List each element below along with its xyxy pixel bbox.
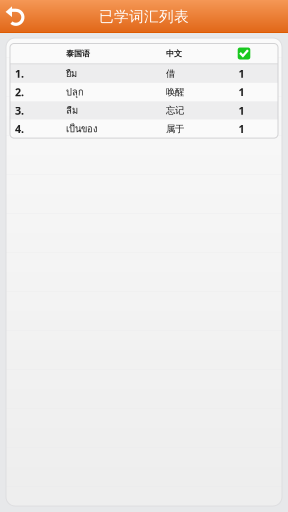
staticText: 3. [15,103,24,118]
staticText: 1 [238,122,244,136]
staticText: 中文 [166,49,182,58]
staticText: 4. [15,122,24,136]
button[interactable]: Back [0,0,34,32]
staticText: 1. [15,67,24,81]
staticText: 已学词汇列表 [99,7,189,25]
staticText: 2. [15,85,24,99]
staticText: 属于 [166,123,184,135]
staticText: เป็นของ [66,122,98,136]
staticText: 1 [238,67,244,81]
staticText: 借 [166,68,175,79]
button[interactable]: 4. [10,120,278,138]
staticText: ลืม [66,103,78,118]
staticText: ยืม [66,66,77,81]
staticText: 1 [238,85,244,99]
button[interactable]: 3. [10,101,278,120]
staticText: ปลุก [66,85,84,99]
button[interactable]: 1. [10,64,278,83]
staticText: 泰国语 [66,49,90,58]
staticText: 1 [238,103,244,118]
button[interactable]: 2. [10,83,278,101]
staticText: 唤醒 [166,86,184,98]
staticText: 忘记 [166,105,184,116]
